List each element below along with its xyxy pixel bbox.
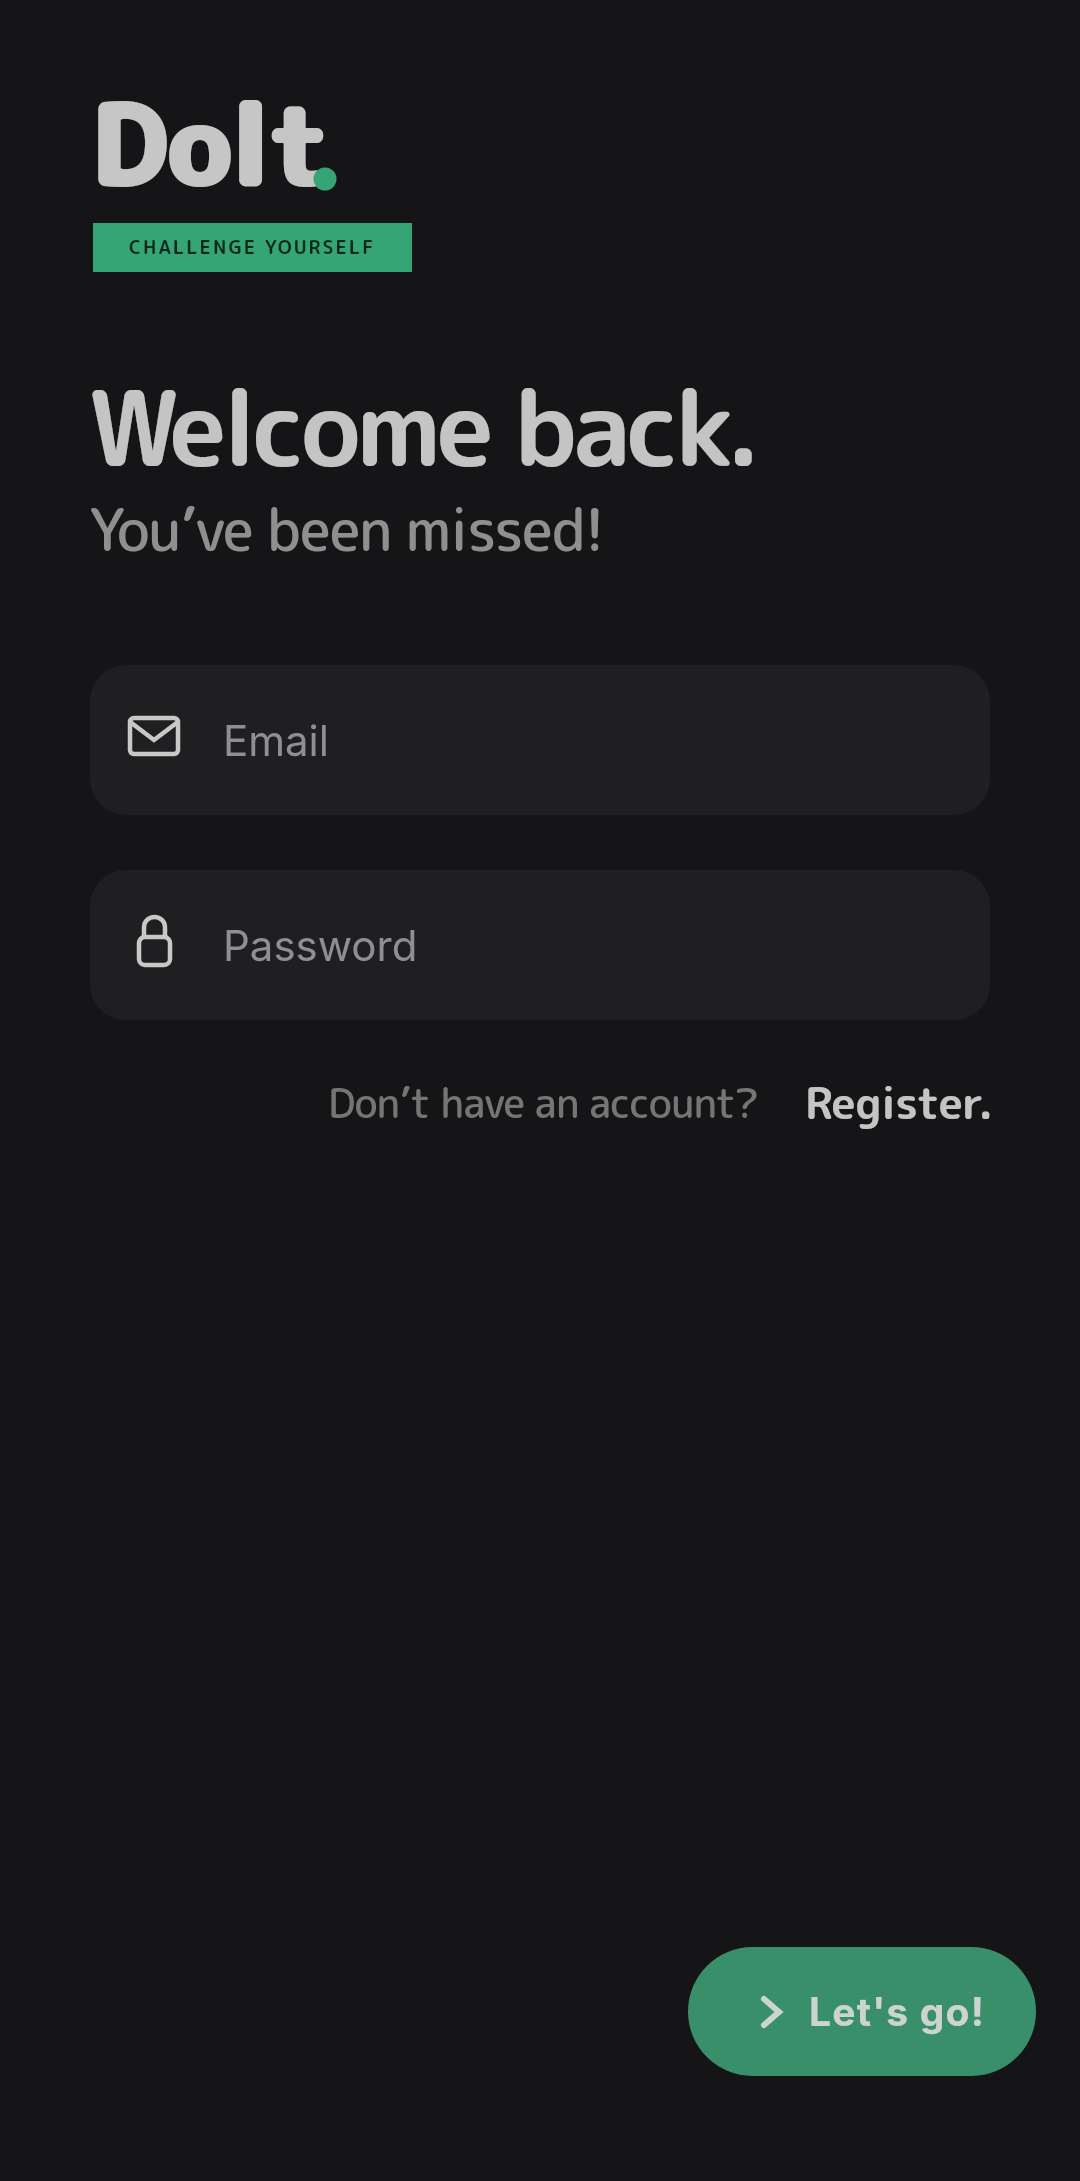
staticText: Welcome back. <box>88 354 757 499</box>
button[interactable]: Email <box>90 665 990 815</box>
staticText: Don’t have an account? <box>328 1074 759 1131</box>
staticText: Email <box>223 715 329 766</box>
staticText: Let's go! <box>809 1988 986 2035</box>
button[interactable]: Password <box>90 870 990 1020</box>
staticText: You’ve been missed! <box>89 489 604 570</box>
staticText: Password <box>223 920 418 971</box>
staticText: CHALLENGE YOURSELF <box>129 234 376 261</box>
button[interactable]: Register. <box>805 1072 993 1133</box>
button[interactable]: Let's go! <box>688 1947 1036 2076</box>
staticText: Dolt <box>90 63 327 222</box>
